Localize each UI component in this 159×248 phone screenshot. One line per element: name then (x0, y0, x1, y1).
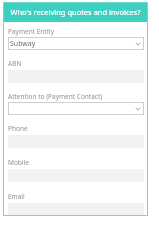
staticText: Email (8, 192, 25, 201)
staticText: Attention to (Payment Contact) (8, 92, 103, 101)
button[interactable] (8, 203, 144, 216)
staticText: Payment Entity (8, 27, 55, 36)
button[interactable]: Select option (8, 37, 144, 50)
staticText: Mobile (8, 158, 29, 167)
staticText: Phone (8, 124, 28, 133)
staticText: Subway (10, 39, 36, 49)
staticText: Who's receiving quotes and invoices? (10, 7, 141, 17)
staticText: ABN (8, 59, 22, 68)
button[interactable]: Select option (8, 102, 144, 115)
